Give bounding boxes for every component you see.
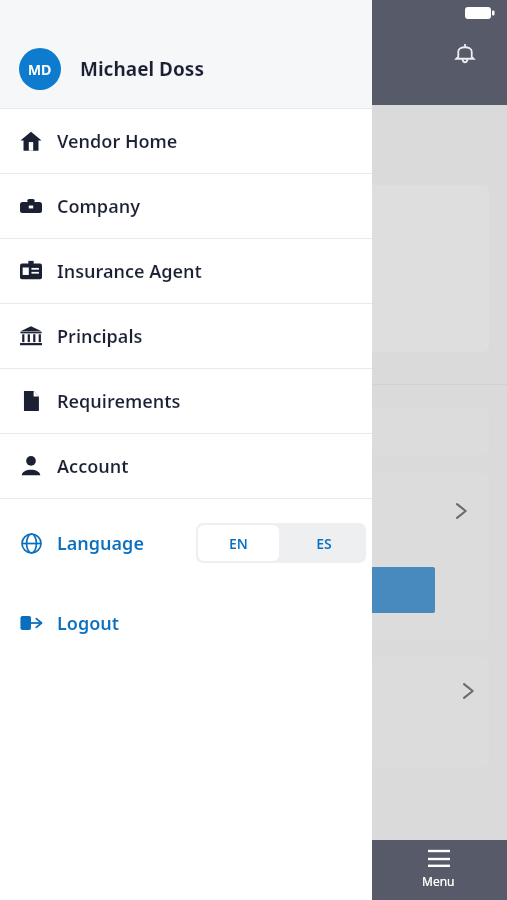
button[interactable]: EN <box>198 525 279 561</box>
button[interactable]: Notifications <box>443 31 487 75</box>
staticText: Company <box>57 194 141 219</box>
button[interactable]: Principals <box>0 304 372 368</box>
staticText: There is an important notice for you. Yo… <box>36 262 220 310</box>
button[interactable]: Open <box>441 491 481 531</box>
staticText: Principals <box>57 324 143 349</box>
button[interactable]: ES <box>281 523 366 563</box>
button[interactable]: Menu <box>370 840 507 900</box>
button[interactable]: Certification <box>18 657 489 767</box>
button[interactable]: Requirements <box>0 369 372 433</box>
staticText: Language <box>57 531 144 556</box>
staticText: MD <box>28 60 52 79</box>
staticText: Menu <box>422 873 455 889</box>
staticText: Account <box>57 454 129 479</box>
button[interactable]: Important message <box>18 185 489 352</box>
button[interactable]: Insurance Agent <box>0 239 372 303</box>
staticText: ES <box>316 534 332 553</box>
staticText: Insurance Agent <box>57 259 202 284</box>
button[interactable] <box>36 567 435 613</box>
button[interactable]: Logout <box>0 587 372 659</box>
staticText: Logout <box>57 611 120 636</box>
button[interactable]: Language <box>0 499 372 587</box>
button[interactable]: Vendor Home <box>0 109 372 173</box>
staticText: Vendor Home <box>57 129 178 154</box>
staticText: EN <box>229 534 248 553</box>
staticText: Important message <box>36 227 204 250</box>
button[interactable]: Account <box>0 434 372 498</box>
button[interactable] <box>18 407 489 455</box>
staticText: Requirements <box>57 389 181 414</box>
button[interactable]: Company <box>0 174 372 238</box>
staticText: Michael Doss <box>80 56 204 82</box>
